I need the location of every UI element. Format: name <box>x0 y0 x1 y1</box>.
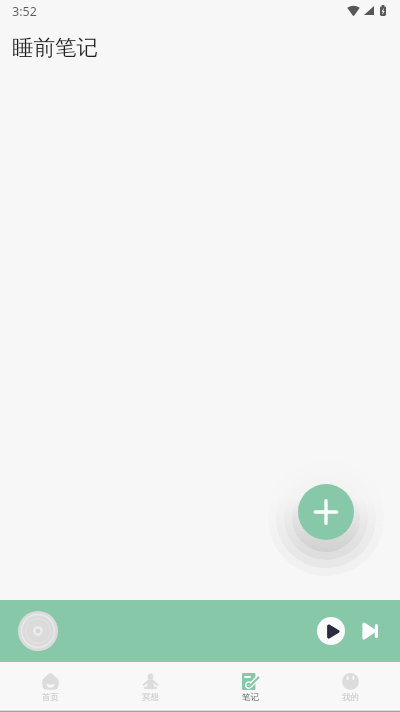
button[interactable]: 冥想 <box>100 662 200 712</box>
staticText: 睡前笔记 <box>12 34 98 61</box>
button[interactable]: Next track <box>359 619 383 643</box>
button[interactable]: 笔记 <box>200 662 300 712</box>
staticText: 首页 <box>42 692 59 703</box>
button[interactable]: Now playing <box>18 611 58 651</box>
staticText: 笔记 <box>242 692 259 703</box>
staticText: 冥想 <box>142 692 159 703</box>
button[interactable]: Play <box>317 617 345 645</box>
button[interactable]: 首页 <box>0 662 100 712</box>
staticText: 我的 <box>342 692 359 703</box>
staticText: 3:52 <box>12 3 37 20</box>
button[interactable]: 我的 <box>300 662 400 712</box>
button[interactable]: Add note <box>298 484 354 540</box>
